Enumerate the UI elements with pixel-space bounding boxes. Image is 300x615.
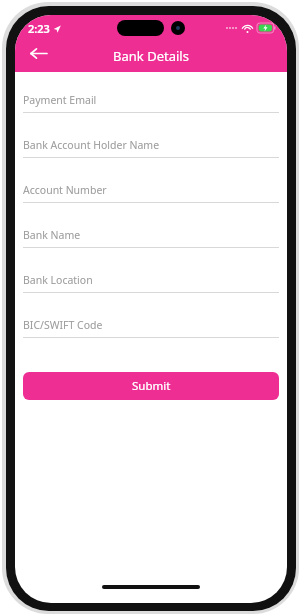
staticText: Bank Name	[23, 228, 81, 242]
staticText: Submit	[132, 378, 171, 394]
staticText: Payment Email	[23, 93, 97, 107]
staticText: 2:23	[28, 21, 50, 36]
button[interactable]: Bank Name	[23, 223, 279, 268]
button[interactable]: Payment Email	[23, 88, 279, 133]
button[interactable]: Bank Location	[23, 268, 279, 313]
staticText: Account Number	[23, 183, 107, 197]
button[interactable]: Bank Account Holder Name	[23, 133, 279, 178]
staticText: Bank Account Holder Name	[23, 138, 160, 152]
staticText: Bank Details	[113, 47, 189, 65]
button[interactable]: Submit	[23, 372, 279, 400]
button[interactable]: BIC/SWIFT Code	[23, 313, 279, 358]
button[interactable]: Back	[21, 36, 55, 70]
button[interactable]: Account Number	[23, 178, 279, 223]
staticText: BIC/SWIFT Code	[23, 318, 103, 332]
staticText: Bank Location	[23, 273, 93, 287]
